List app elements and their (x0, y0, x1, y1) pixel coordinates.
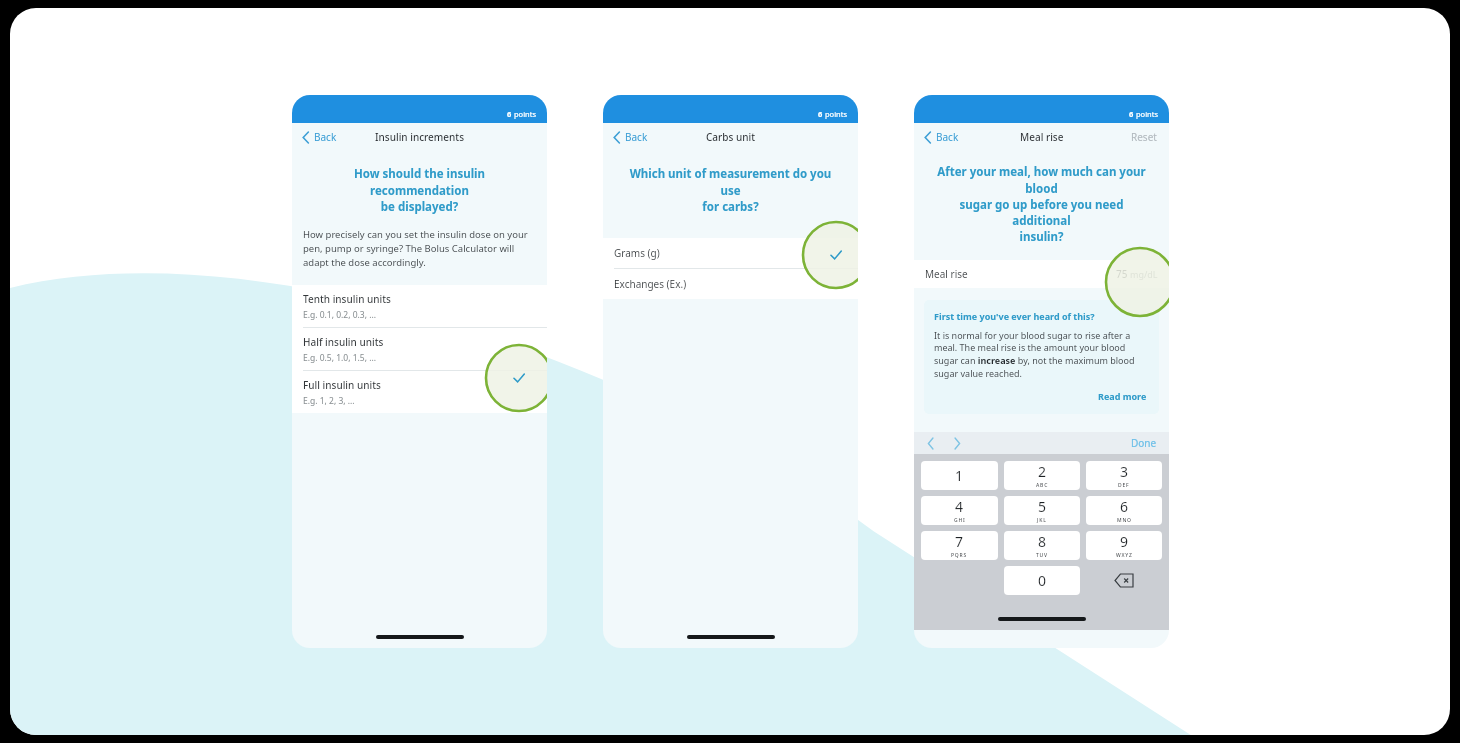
button[interactable]: Tenth insulin units (292, 285, 547, 327)
staticText: 75 mg/dL (1116, 267, 1158, 281)
staticText: Half insulin units (303, 335, 384, 349)
staticText: 4 (955, 497, 964, 516)
staticText: Carbs unit (706, 130, 756, 144)
staticText: E.g. 0.1, 0.2, 0.3, ... (303, 309, 377, 321)
button[interactable]: 5 (1004, 496, 1080, 525)
staticText: GHI (954, 517, 966, 524)
staticText: Tenth insulin units (303, 292, 391, 306)
staticText: Which unit of measurement do you use for… (623, 166, 838, 214)
button[interactable]: 8 (1004, 531, 1080, 560)
button[interactable]: 4 (921, 496, 998, 525)
staticText: 8 (1038, 532, 1047, 551)
staticText: It is normal for your blood sugar to ris… (934, 329, 1149, 380)
button[interactable]: Delete (1086, 566, 1162, 595)
button[interactable]: 0 (1004, 566, 1080, 595)
staticText: 7 (955, 532, 964, 551)
staticText: Back (314, 130, 337, 144)
staticText: WXYZ (1116, 552, 1133, 559)
button[interactable]: Back (300, 127, 339, 147)
staticText: Full insulin units (303, 378, 381, 392)
button[interactable]: 6 (1086, 496, 1162, 525)
staticText: Done (1131, 436, 1157, 450)
staticText: 1 (955, 466, 964, 485)
staticText: First time you've ever heard of this? (934, 310, 1095, 322)
staticText: Back (625, 130, 648, 144)
staticText: points (514, 109, 537, 119)
staticText: Read more (1098, 390, 1147, 402)
staticText: JKL (1037, 517, 1047, 524)
button[interactable]: 3 (1086, 461, 1162, 490)
staticText: Meal rise (1020, 130, 1064, 144)
staticText: Back (936, 130, 959, 144)
staticText: MNO (1117, 517, 1132, 524)
staticText: How precisely can you set the insulin do… (303, 228, 536, 269)
button[interactable]: Half insulin units (292, 328, 547, 370)
staticText: Reset (1131, 130, 1157, 144)
button[interactable]: Back (611, 127, 650, 147)
staticText: How should the insulin recommendation be… (312, 166, 527, 214)
button[interactable]: Meal rise (914, 260, 1169, 288)
staticText: 6 (1129, 109, 1134, 119)
staticText: TUV (1036, 552, 1048, 559)
staticText: 9 (1120, 532, 1129, 551)
button[interactable]: 2 (1004, 461, 1080, 490)
staticText: 6 (1120, 497, 1129, 516)
staticText: 2 (1038, 462, 1047, 481)
staticText: Insulin increments (375, 130, 465, 144)
button[interactable]: Previous field (924, 435, 937, 452)
button[interactable]: Done (1129, 434, 1159, 452)
staticText: DEF (1118, 482, 1130, 489)
staticText: PQRS (951, 552, 968, 559)
staticText: Meal rise (925, 267, 968, 281)
button[interactable]: Full insulin units (292, 371, 547, 413)
button[interactable]: Grams (g) (603, 238, 858, 268)
staticText: E.g. 1, 2, 3, ... (303, 395, 355, 407)
button[interactable]: Read more (1096, 388, 1149, 404)
staticText: E.g. 0.5, 1.0, 1.5, ... (303, 352, 377, 364)
button[interactable]: 1 (921, 461, 998, 490)
button[interactable]: Reset (1129, 128, 1159, 146)
staticText: 6 (818, 109, 823, 119)
staticText: points (825, 109, 848, 119)
staticText: 6 (507, 109, 512, 119)
staticText: 0 (1038, 571, 1047, 590)
staticText: 3 (1120, 462, 1129, 481)
staticText: 5 (1038, 497, 1047, 516)
button[interactable]: Exchanges (Ex.) (603, 269, 858, 299)
button[interactable]: Next field (951, 435, 964, 452)
staticText: Exchanges (Ex.) (614, 277, 687, 291)
button[interactable]: Back (922, 127, 961, 147)
staticText: Grams (g) (614, 246, 660, 260)
button[interactable]: 7 (921, 531, 998, 560)
button[interactable]: 9 (1086, 531, 1162, 560)
staticText: points (1136, 109, 1159, 119)
staticText: After your meal, how much can your blood… (934, 164, 1149, 244)
staticText: ABC (1036, 482, 1049, 489)
